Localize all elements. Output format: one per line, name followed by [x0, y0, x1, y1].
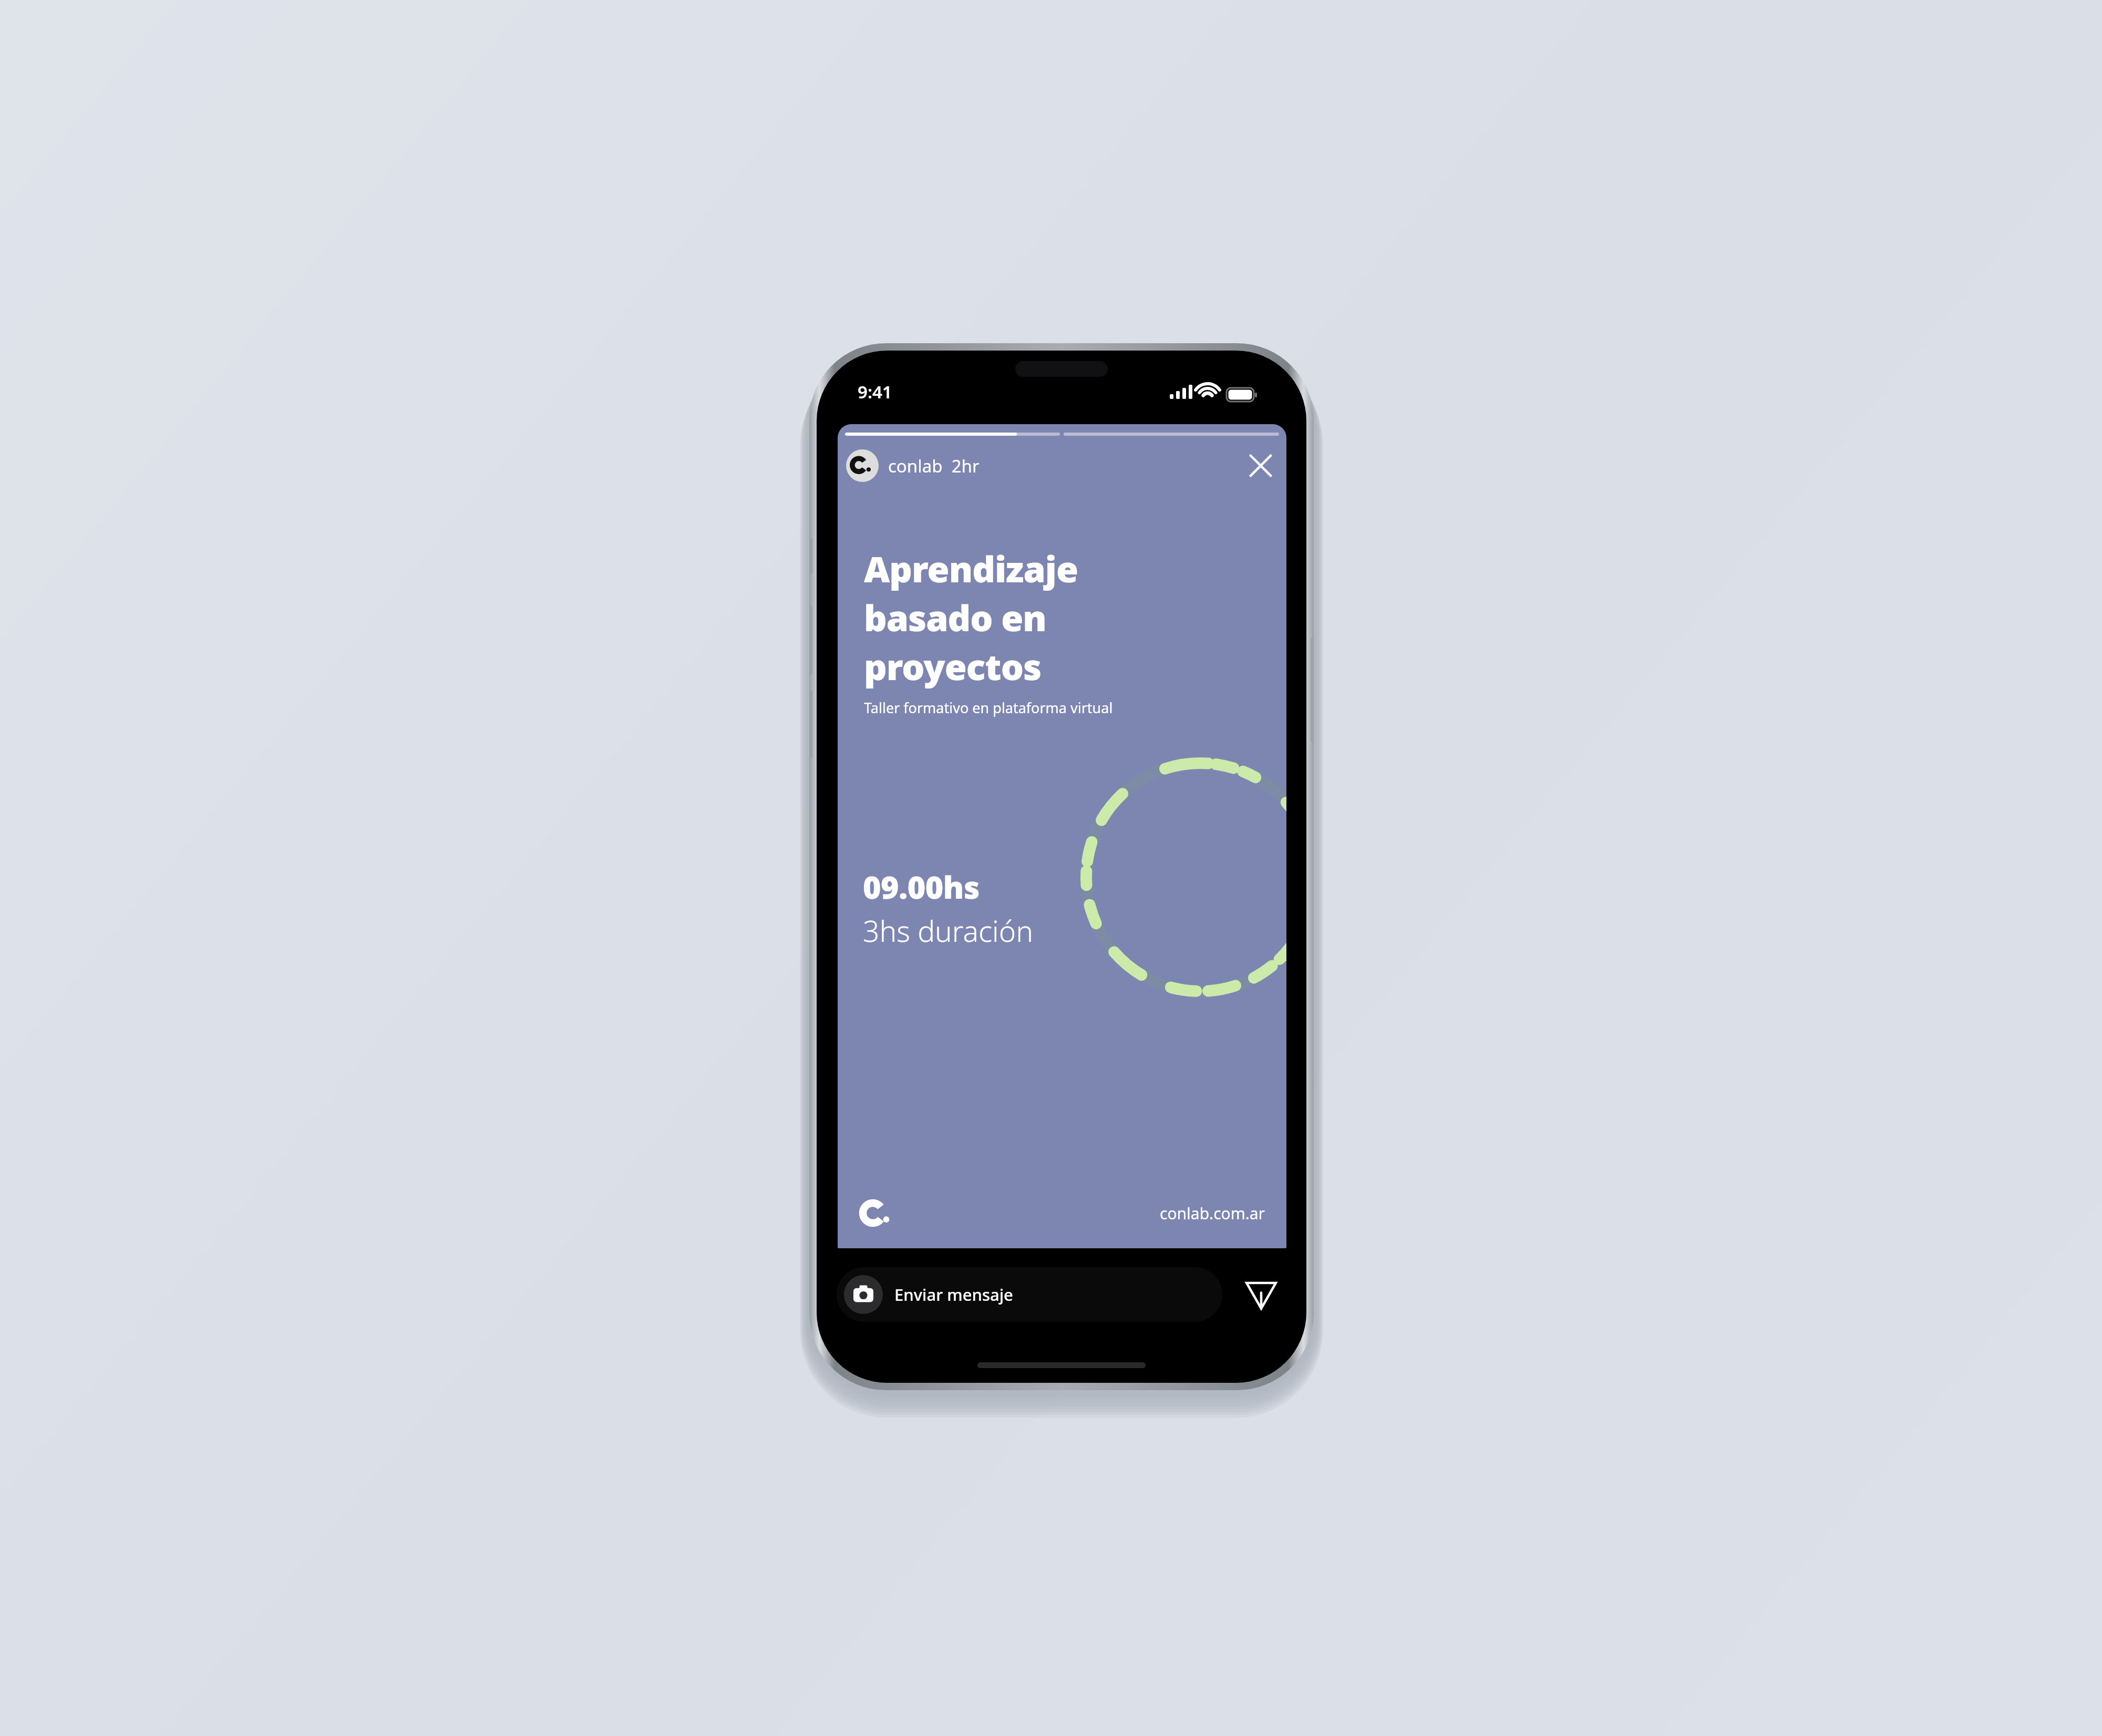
button[interactable]: conlab 2hr [846, 446, 980, 485]
staticText: 3hs duración [863, 911, 1034, 950]
staticText: conlab.com.ar [1160, 1203, 1265, 1224]
button[interactable]: Enviar mensaje [837, 1267, 1222, 1322]
staticText: Enviar mensaje [894, 1283, 1013, 1306]
staticText: basado en [864, 593, 1046, 642]
staticText: Taller formativo en plataforma virtual [864, 698, 1113, 717]
staticText: Aprendizaje [864, 544, 1078, 593]
staticText: proyectos [864, 642, 1042, 691]
button[interactable]: Enviar [1236, 1269, 1286, 1320]
staticText: 09.00hs [863, 866, 980, 908]
staticText: 9:41 [858, 380, 892, 404]
button[interactable]: Cerrar [1245, 450, 1276, 481]
staticText: conlab 2hr [888, 454, 980, 478]
